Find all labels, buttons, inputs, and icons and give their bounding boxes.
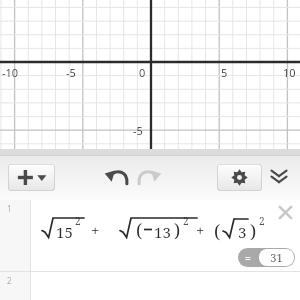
staticText: ): [174, 218, 181, 243]
button[interactable]: Add expression: [8, 164, 55, 191]
staticText: (: [214, 219, 221, 244]
button[interactable]: Undo: [104, 165, 130, 189]
staticText: 5: [221, 65, 228, 80]
staticText: +: [91, 220, 100, 240]
button[interactable]: Delete expression: [275, 202, 296, 223]
staticText: 3: [238, 222, 247, 242]
staticText: 2: [7, 275, 12, 286]
button[interactable]: Settings: [217, 164, 262, 191]
button[interactable]: Collapse panel: [266, 165, 292, 190]
staticText: -5: [133, 123, 143, 138]
staticText: 2: [259, 214, 265, 228]
button[interactable]: Redo: [136, 165, 162, 189]
staticText: (: [136, 218, 143, 243]
staticText: 10: [283, 65, 296, 80]
staticText: =: [245, 251, 251, 265]
staticText: +: [196, 220, 205, 240]
staticText: 1: [7, 203, 12, 214]
staticText: -10: [2, 65, 19, 80]
staticText: 13: [154, 222, 171, 242]
staticText: 15: [56, 222, 73, 242]
staticText: 0: [139, 65, 146, 80]
staticText: 31: [270, 250, 283, 265]
staticText: ): [250, 219, 257, 244]
button[interactable]: =: [238, 248, 295, 267]
staticText: -5: [66, 65, 76, 80]
staticText: 2: [75, 214, 81, 228]
staticText: 2: [183, 214, 189, 228]
